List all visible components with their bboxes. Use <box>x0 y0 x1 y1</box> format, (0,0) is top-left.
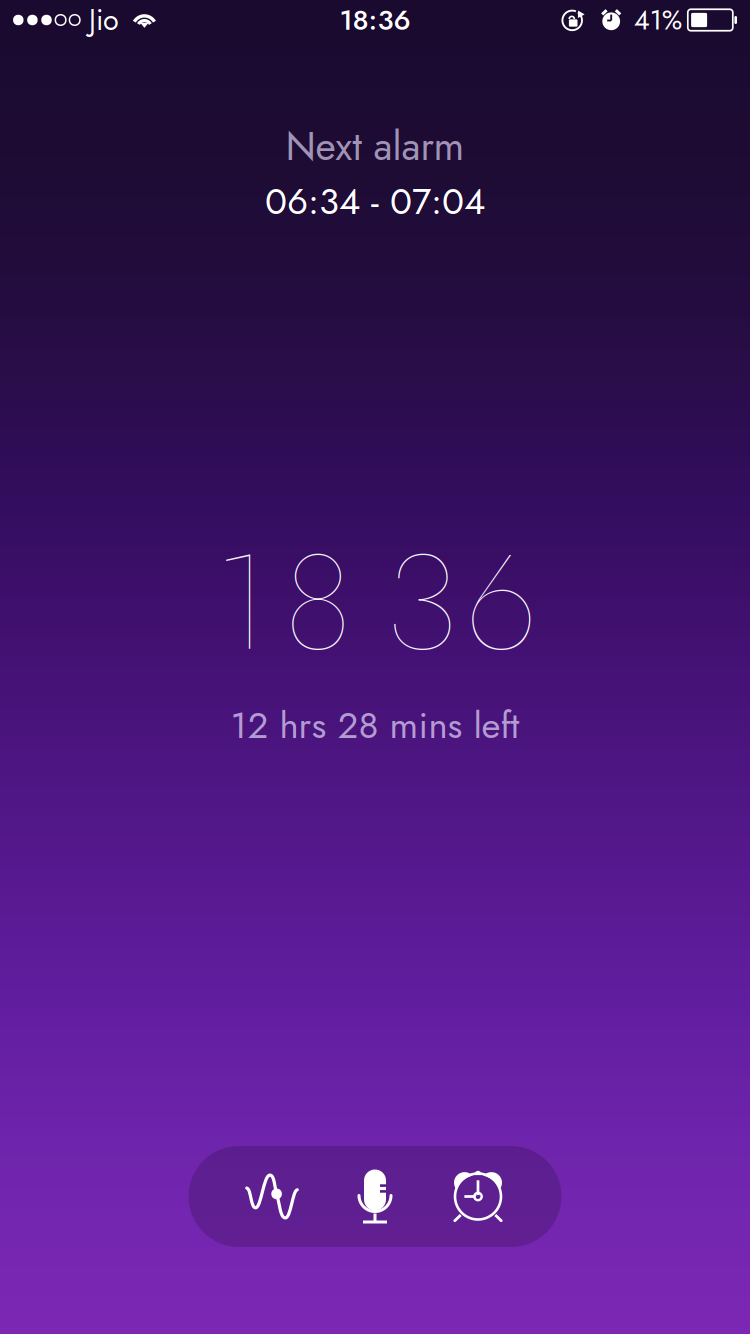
staticText: 1 <box>213 506 268 699</box>
staticText: 8 <box>283 506 352 699</box>
staticText: 3 <box>385 506 458 699</box>
staticText: 06:34 - 07:04 <box>265 175 485 228</box>
button[interactable]: Record <box>323 1146 426 1247</box>
button[interactable]: Sleep graph <box>220 1146 323 1247</box>
button[interactable]: Alarm <box>426 1146 529 1247</box>
staticText: 41% <box>634 0 683 40</box>
staticText: 6 <box>465 506 536 699</box>
staticText: Next alarm <box>285 118 464 175</box>
staticText: 18:36 <box>339 0 410 40</box>
staticText: Jio <box>89 0 119 41</box>
staticText: 12 hrs 28 mins left <box>230 699 519 752</box>
